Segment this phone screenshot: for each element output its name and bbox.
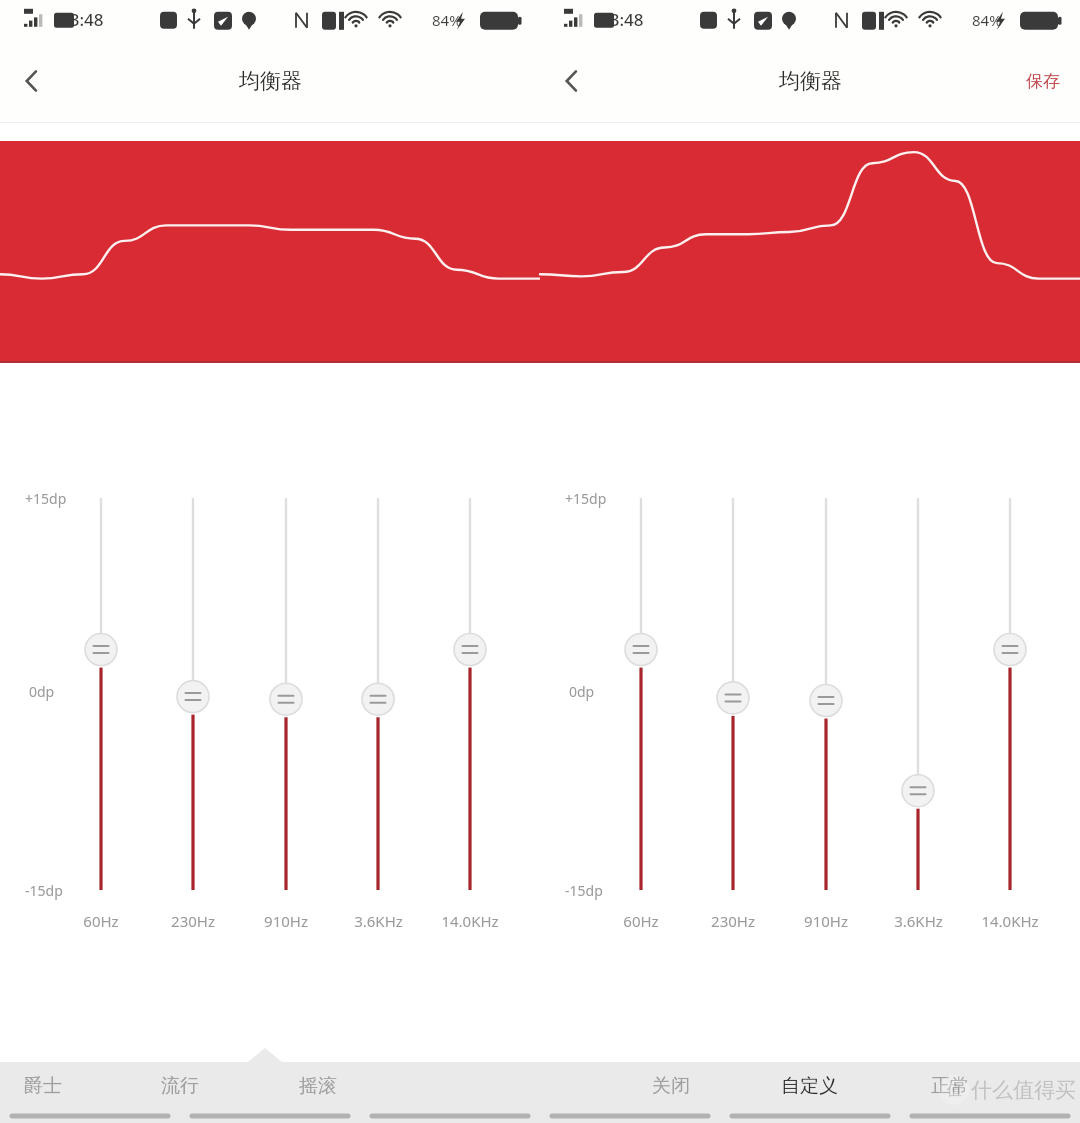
staticText: 值: [947, 1081, 962, 1100]
button[interactable]: 60Hz: [594, 911, 688, 931]
button[interactable]: 3.6KHz: [871, 911, 965, 931]
button[interactable]: 保存: [1016, 63, 1070, 100]
staticText: -15dp: [565, 881, 603, 900]
staticText: 保存: [1026, 71, 1060, 92]
staticText: +15dp: [25, 489, 67, 508]
staticText: 关闭: [652, 1074, 690, 1098]
staticText: 摇滚: [299, 1074, 337, 1098]
staticText: 60Hz: [83, 911, 119, 931]
staticText: 60Hz: [623, 911, 659, 931]
staticText: 14.0KHz: [981, 911, 1039, 931]
staticText: 230Hz: [711, 911, 755, 931]
staticText: 3.6KHz: [354, 911, 403, 931]
button[interactable]: Back: [548, 57, 596, 105]
staticText: 910Hz: [264, 911, 308, 931]
staticText: 14.0KHz: [441, 911, 499, 931]
staticText: 均衡器: [239, 68, 302, 94]
button[interactable]: 3.6KHz: [331, 911, 425, 931]
staticText: 均衡器: [779, 68, 842, 94]
staticText: 23:48: [60, 8, 104, 31]
staticText: 自定义: [781, 1074, 838, 1098]
staticText: 爵士: [24, 1074, 62, 1098]
button[interactable]: 摇滚: [266, 1062, 370, 1123]
staticText: 910Hz: [804, 911, 848, 931]
button[interactable]: 流行: [128, 1062, 232, 1123]
button[interactable]: 自定义: [757, 1062, 861, 1123]
staticText: 84%: [432, 10, 462, 30]
button[interactable]: 910Hz: [779, 911, 873, 931]
staticText: 流行: [161, 1074, 199, 1098]
button[interactable]: 正常: [898, 1062, 1002, 1123]
staticText: 230Hz: [171, 911, 215, 931]
button[interactable]: 60Hz: [54, 911, 148, 931]
staticText: 正常: [931, 1074, 969, 1098]
staticText: 什么值得买: [971, 1077, 1076, 1103]
button[interactable]: 爵士: [0, 1062, 95, 1123]
staticText: 84%: [972, 10, 1002, 30]
button[interactable]: 14.0KHz: [423, 911, 517, 931]
staticText: -15dp: [25, 881, 63, 900]
button[interactable]: Back: [8, 57, 56, 105]
staticText: 3.6KHz: [894, 911, 943, 931]
staticText: +15dp: [565, 489, 607, 508]
button[interactable]: 14.0KHz: [963, 911, 1057, 931]
staticText: 0dp: [569, 682, 595, 701]
button[interactable]: 230Hz: [686, 911, 780, 931]
button[interactable]: 230Hz: [146, 911, 240, 931]
button[interactable]: 910Hz: [239, 911, 333, 931]
staticText: 0dp: [29, 682, 55, 701]
button[interactable]: 关闭: [619, 1062, 723, 1123]
staticText: 23:48: [600, 8, 644, 31]
